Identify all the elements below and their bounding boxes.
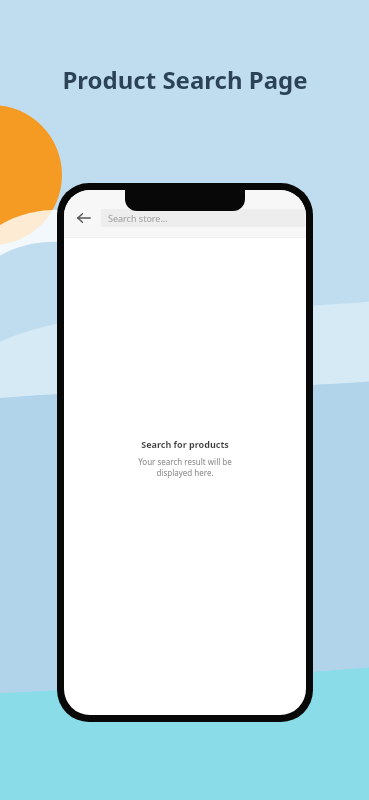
staticText: Product Search Page <box>62 63 308 96</box>
staticText: Your search result will be displayed her… <box>138 456 232 479</box>
button[interactable]: Search store... <box>101 209 305 227</box>
staticText: Search for products <box>141 438 229 450</box>
button[interactable]: Back <box>72 206 96 230</box>
staticText: Search store... <box>108 212 168 224</box>
